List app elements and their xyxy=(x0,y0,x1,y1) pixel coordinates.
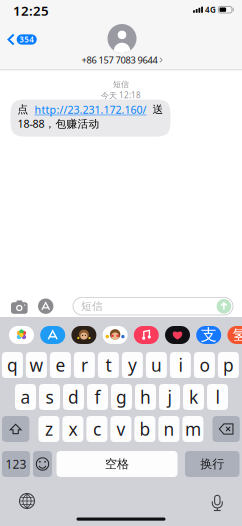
staticText: 支 xyxy=(201,325,217,345)
button[interactable]: h xyxy=(135,384,156,410)
button[interactable]: e xyxy=(50,352,71,378)
staticText: 空格 xyxy=(105,457,129,471)
button[interactable]: App xyxy=(103,326,128,344)
staticText: v xyxy=(116,417,125,440)
button[interactable]: t xyxy=(98,352,119,378)
staticText: e xyxy=(55,353,65,376)
button[interactable]: Delete xyxy=(212,416,240,442)
button[interactable]: q xyxy=(2,352,23,378)
button[interactable]: Dictate xyxy=(212,492,223,508)
button[interactable]: iMessage apps xyxy=(38,298,53,314)
button[interactable]: Contact details xyxy=(0,0,120,42)
staticText: 354 xyxy=(19,34,34,45)
staticText: d xyxy=(68,385,79,408)
button[interactable]: App xyxy=(9,326,34,344)
staticText: http://23.231.172.160/ xyxy=(34,102,146,117)
staticText: u xyxy=(151,353,162,376)
staticText: t xyxy=(105,353,111,376)
staticText: 短信 xyxy=(113,79,129,89)
staticText: b xyxy=(139,417,150,440)
staticText: 氢 xyxy=(232,326,242,344)
button[interactable]: Shift xyxy=(2,416,29,442)
staticText: 送 xyxy=(152,103,163,116)
button[interactable]: k xyxy=(183,384,204,410)
staticText: q xyxy=(7,353,18,376)
button[interactable]: l xyxy=(207,384,228,410)
staticText: z xyxy=(45,417,53,440)
button[interactable]: App xyxy=(134,326,159,344)
staticText: +86 157 7083 9644 xyxy=(81,54,157,66)
staticText: x xyxy=(68,417,77,440)
button[interactable]: j xyxy=(159,384,180,410)
staticText: a xyxy=(20,385,30,408)
button[interactable]: Camera xyxy=(11,299,28,313)
button[interactable]: n xyxy=(158,416,179,442)
staticText: i xyxy=(178,353,182,376)
button[interactable]: App xyxy=(40,326,65,344)
button[interactable]: Message field xyxy=(0,0,160,17)
staticText: 4G xyxy=(205,4,216,15)
button[interactable]: c xyxy=(86,416,107,442)
staticText: r xyxy=(81,353,88,376)
staticText: 换行 xyxy=(200,457,224,471)
staticText: j xyxy=(167,385,171,408)
staticText: f xyxy=(94,385,100,408)
staticText: k xyxy=(189,385,198,408)
staticText: o xyxy=(199,353,209,376)
button[interactable]: v xyxy=(110,416,131,442)
button[interactable]: App xyxy=(196,326,221,344)
staticText: p xyxy=(223,353,234,376)
button[interactable]: a xyxy=(15,384,36,410)
button[interactable]: r xyxy=(74,352,95,378)
button[interactable]: 空格 xyxy=(56,451,177,477)
button[interactable]: 123 xyxy=(2,451,30,477)
button[interactable]: w xyxy=(26,352,47,378)
staticText: 短信 xyxy=(81,300,103,313)
staticText: g xyxy=(116,385,127,408)
staticText: m xyxy=(185,417,201,440)
staticText: y xyxy=(128,353,137,376)
button[interactable]: App xyxy=(227,326,242,344)
staticText: 123 xyxy=(5,456,26,472)
staticText: w xyxy=(29,353,43,376)
button[interactable]: u xyxy=(146,352,167,378)
staticText: 点 xyxy=(17,103,28,116)
staticText: 18-88，包赚活动 xyxy=(17,116,99,131)
button[interactable]: i xyxy=(170,352,191,378)
button[interactable]: 换行 xyxy=(185,451,239,477)
button[interactable]: App xyxy=(71,326,96,344)
button[interactable]: 354 xyxy=(0,0,36,20)
staticText: s xyxy=(45,385,53,408)
button[interactable]: m xyxy=(182,416,203,442)
button[interactable]: f xyxy=(87,384,108,410)
button[interactable]: g xyxy=(111,384,132,410)
button[interactable]: y xyxy=(122,352,143,378)
button[interactable]: App xyxy=(165,326,190,344)
staticText: n xyxy=(163,417,174,440)
button[interactable]: b xyxy=(134,416,155,442)
staticText: h xyxy=(140,385,151,408)
button[interactable]: Next keyboard xyxy=(19,493,34,508)
button[interactable]: s xyxy=(39,384,60,410)
staticText: 12:25 xyxy=(13,2,49,19)
button[interactable]: Send xyxy=(217,299,231,314)
button[interactable]: d xyxy=(63,384,84,410)
button[interactable]: Emoji keyboard xyxy=(33,451,52,477)
button[interactable]: x xyxy=(62,416,83,442)
staticText: l xyxy=(215,385,219,408)
staticText: 今天 12:18 xyxy=(101,90,141,100)
button[interactable]: z xyxy=(38,416,59,442)
staticText: c xyxy=(93,417,101,440)
button[interactable]: p xyxy=(218,352,239,378)
button[interactable]: o xyxy=(194,352,215,378)
